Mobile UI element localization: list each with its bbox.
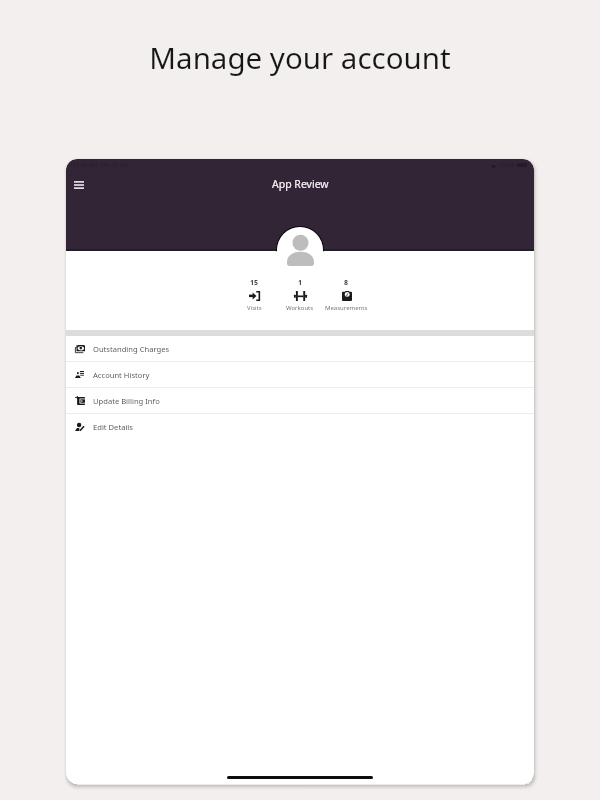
button[interactable]: Update Billing Info — [66, 388, 534, 413]
button[interactable]: 1 — [277, 278, 323, 312]
staticText: 8 — [344, 278, 349, 288]
button[interactable]: Account History — [66, 362, 534, 387]
staticText: Account History — [93, 370, 150, 380]
staticText: Measurements — [325, 304, 368, 312]
staticText: 1 — [298, 278, 303, 288]
button[interactable]: Outstanding Charges — [66, 336, 534, 361]
staticText: Workouts — [286, 304, 314, 312]
staticText: Edit Details — [93, 422, 133, 432]
staticText: Outstanding Charges — [93, 344, 170, 354]
button[interactable]: Open navigation menu — [68, 174, 89, 195]
staticText: App Review — [272, 177, 329, 191]
button[interactable]: Edit Details — [66, 414, 534, 439]
button[interactable]: 15 — [231, 278, 277, 312]
staticText: Update Billing Info — [93, 396, 160, 406]
staticText: Visits — [247, 304, 262, 312]
staticText: Manage your account — [0, 37, 600, 77]
staticText: 15 — [250, 278, 259, 288]
button[interactable]: 8 — [323, 278, 369, 312]
